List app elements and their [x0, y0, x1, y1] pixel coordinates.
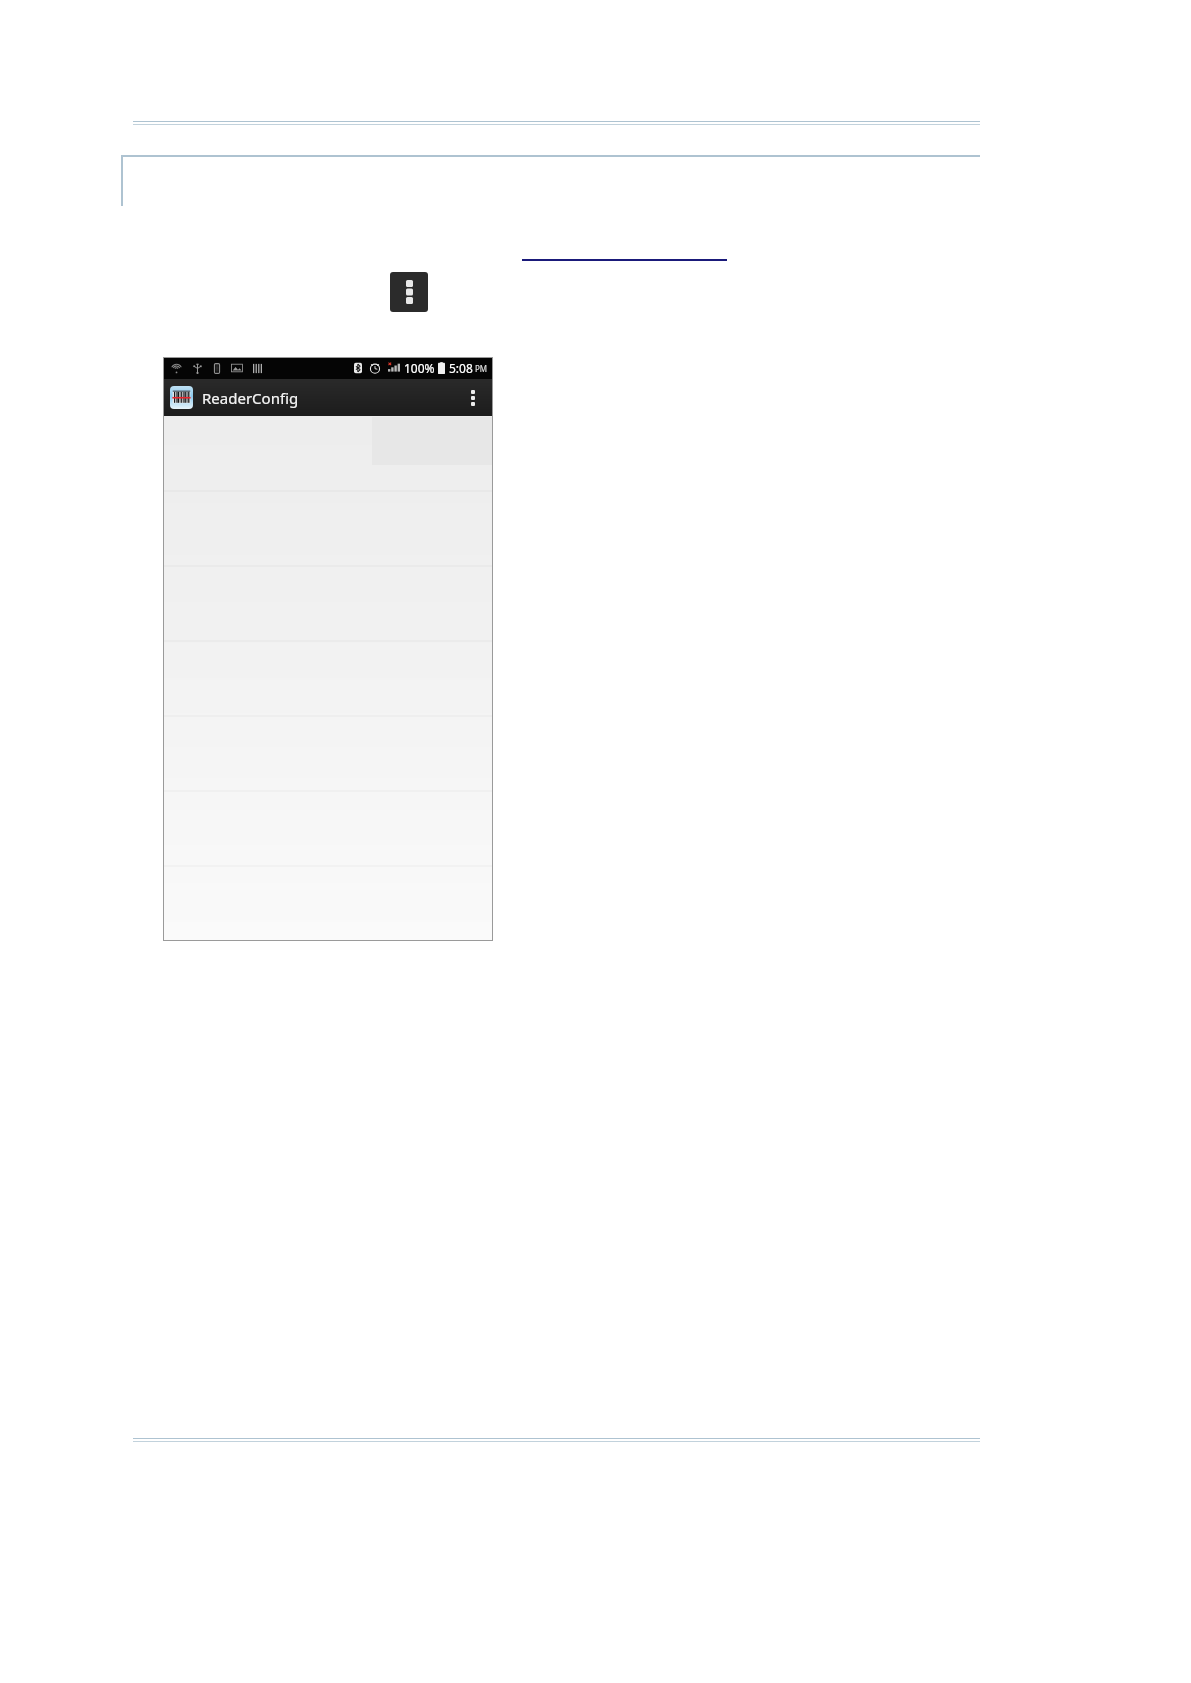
staticText: PM — [475, 363, 488, 374]
staticText: 5:08 — [449, 360, 473, 376]
staticText: ReaderConfig — [202, 388, 299, 408]
staticText: 100% — [404, 360, 435, 376]
button[interactable]: More options — [460, 379, 486, 416]
button[interactable]: More options — [390, 272, 428, 312]
